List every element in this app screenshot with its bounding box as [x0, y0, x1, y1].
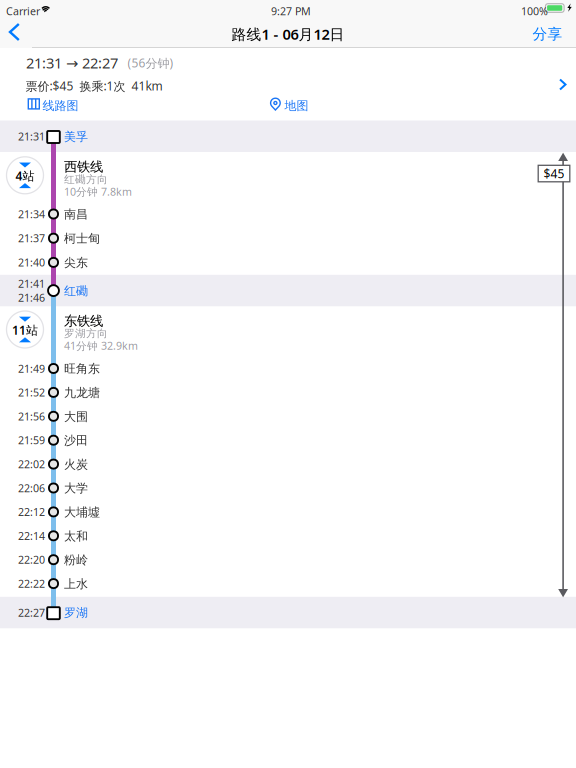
staticText: 21:31: [18, 129, 45, 143]
staticText: 票价:$45 换乘:1次 41km: [26, 78, 163, 94]
staticText: 南昌: [64, 207, 88, 222]
staticText: 22:22: [18, 576, 45, 591]
staticText: 太和: [64, 529, 88, 543]
staticText: 22:12: [18, 505, 45, 519]
staticText: 11站: [12, 322, 38, 338]
staticText: 线路图: [42, 98, 78, 113]
staticText: (56分钟): [127, 55, 173, 71]
staticText: 沙田: [64, 433, 88, 448]
staticText: 九龙塘: [64, 385, 100, 400]
staticText: 火炭: [64, 457, 88, 472]
staticText: 4站: [15, 168, 34, 184]
staticText: 21:49: [18, 361, 45, 376]
staticText: 21:37: [18, 231, 45, 245]
button[interactable]: 21:31 → 22:27: [0, 48, 576, 120]
staticText: 22:02: [18, 457, 45, 471]
staticText: Carrier: [6, 4, 40, 18]
staticText: 粉岭: [64, 553, 88, 567]
button[interactable]: Back: [0, 20, 32, 48]
staticText: 9:27 PM: [271, 4, 311, 18]
staticText: 21:41: [18, 276, 45, 291]
staticText: 柯士甸: [64, 231, 100, 246]
staticText: 21:52: [18, 385, 45, 399]
staticText: 21:56: [18, 409, 45, 423]
staticText: 红磡方向: [64, 173, 108, 186]
staticText: 美孚: [64, 129, 88, 144]
staticText: 分享: [532, 25, 562, 43]
staticText: 41分钟 32.9km: [64, 339, 138, 353]
staticText: 21:40: [18, 255, 45, 269]
staticText: $45: [543, 166, 564, 181]
staticText: 大学: [64, 481, 88, 496]
staticText: 尖东: [64, 255, 88, 270]
button[interactable]: 11站: [6, 311, 43, 348]
staticText: 旺角东: [64, 361, 100, 376]
staticText: 22:27: [18, 605, 45, 620]
staticText: 10分钟 7.8km: [64, 184, 132, 199]
button[interactable]: 分享: [520, 20, 575, 48]
staticText: 22:06: [18, 481, 45, 495]
button[interactable]: 4站: [6, 157, 43, 194]
staticText: 红磡: [64, 284, 88, 298]
staticText: 21:46: [18, 290, 45, 305]
staticText: 罗湖方向: [64, 327, 108, 340]
staticText: 100%: [521, 4, 548, 18]
staticText: 21:59: [18, 433, 45, 447]
staticText: 罗湖: [64, 605, 88, 620]
staticText: 大埔墟: [64, 505, 100, 520]
staticText: 地图: [285, 98, 309, 113]
staticText: 21:31 → 22:27: [26, 53, 118, 72]
staticText: 22:20: [18, 553, 45, 567]
staticText: 21:34: [18, 207, 45, 221]
staticText: 上水: [64, 577, 88, 591]
staticText: 路线1 - 06月12日: [231, 24, 344, 44]
staticText: 西铁线: [64, 159, 103, 175]
staticText: 大围: [64, 409, 88, 424]
staticText: 东铁线: [64, 313, 103, 329]
staticText: 22:14: [18, 529, 45, 543]
